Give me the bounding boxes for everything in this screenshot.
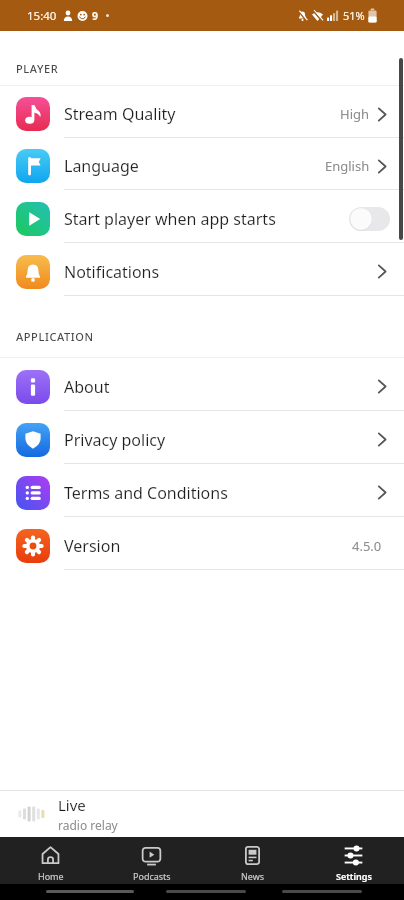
- staticText: PLAYER: [16, 61, 59, 76]
- button[interactable]: Version: [0, 517, 404, 570]
- staticText: 51%: [343, 8, 365, 23]
- staticText: Privacy policy: [64, 429, 166, 451]
- staticText: News: [241, 870, 265, 882]
- staticText: radio relay: [58, 817, 118, 833]
- staticText: Notifications: [64, 261, 160, 283]
- button[interactable]: [46, 890, 134, 893]
- staticText: About: [64, 376, 110, 398]
- button[interactable]: [282, 890, 362, 893]
- staticText: 9: [92, 9, 99, 23]
- staticText: High: [340, 105, 370, 123]
- staticText: Stream Quality: [64, 103, 176, 125]
- button[interactable]: Stream Quality: [0, 86, 404, 138]
- staticText: Live: [58, 795, 86, 815]
- button[interactable]: Language: [0, 138, 404, 190]
- button[interactable]: Home: [0, 837, 101, 884]
- staticText: Language: [64, 155, 139, 177]
- button[interactable]: Terms and Conditions: [0, 464, 404, 517]
- button[interactable]: About: [0, 358, 404, 411]
- button[interactable]: Privacy policy: [0, 411, 404, 464]
- staticText: Start player when app starts: [64, 208, 276, 230]
- staticText: Podcasts: [133, 870, 171, 882]
- staticText: 4.5.0: [352, 537, 382, 555]
- button[interactable]: News: [202, 837, 303, 884]
- staticText: APPLICATION: [16, 329, 94, 344]
- button[interactable]: Podcasts: [101, 837, 202, 884]
- staticText: Terms and Conditions: [64, 482, 228, 504]
- staticText: 15:40: [27, 8, 57, 24]
- staticText: Settings: [336, 870, 372, 882]
- button[interactable]: [166, 890, 246, 893]
- button[interactable]: Notifications: [0, 243, 404, 296]
- button[interactable]: Settings: [303, 837, 404, 884]
- button[interactable]: Live: [0, 790, 404, 837]
- staticText: Version: [64, 535, 121, 557]
- staticText: English: [325, 157, 370, 175]
- staticText: Home: [38, 870, 64, 882]
- button[interactable]: Start player when app starts: [0, 190, 404, 243]
